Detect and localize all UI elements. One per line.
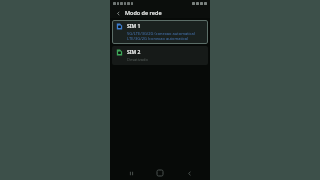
staticText: SIM 1	[127, 23, 141, 30]
staticText: Desativado	[127, 57, 148, 62]
button[interactable]: Back	[181, 167, 197, 179]
button[interactable]: Back	[114, 9, 122, 17]
staticText: SIM 2	[127, 49, 141, 56]
button[interactable]: Recent apps	[123, 167, 139, 179]
button[interactable]: SIM 1	[112, 20, 208, 44]
staticText: LTE/3G/2G (conexao automatica)	[127, 36, 189, 41]
staticText: Modo de rede	[125, 9, 162, 16]
staticText: 5G/LTE/3G/2G (conexao automatica)	[127, 31, 195, 36]
button[interactable]: Home	[152, 167, 168, 179]
button[interactable]: SIM 2	[112, 46, 208, 65]
